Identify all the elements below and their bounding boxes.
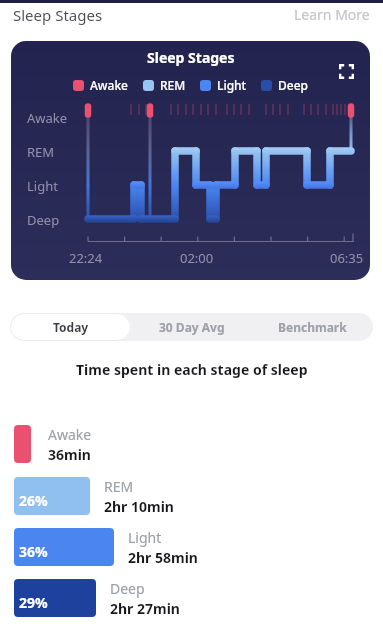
staticText: Deep bbox=[278, 77, 308, 93]
button[interactable]: 36% bbox=[14, 528, 198, 566]
staticText: 29% bbox=[19, 593, 48, 612]
staticText: 36% bbox=[19, 542, 48, 561]
staticText: Awake bbox=[27, 109, 68, 127]
button[interactable]: 30 Day Avg bbox=[131, 313, 252, 341]
staticText: Today bbox=[53, 319, 89, 335]
button[interactable]: 29% bbox=[14, 579, 180, 617]
staticText: 06:35 bbox=[330, 249, 364, 267]
button[interactable]: Today bbox=[10, 313, 131, 341]
staticText: 2hr 27min bbox=[110, 599, 180, 617]
staticText: 26% bbox=[19, 491, 48, 510]
button[interactable]: Learn More bbox=[294, 5, 370, 24]
staticText: REM bbox=[160, 77, 186, 93]
staticText: REM bbox=[104, 477, 134, 496]
staticText: Sleep Stages bbox=[147, 48, 235, 67]
button[interactable]: Awake bbox=[14, 425, 92, 463]
staticText: 02:00 bbox=[180, 249, 214, 267]
staticText: Deep bbox=[27, 211, 60, 229]
staticText: 2hr 10min bbox=[104, 497, 174, 515]
staticText: Awake bbox=[48, 425, 92, 444]
staticText: Light bbox=[217, 77, 247, 93]
button[interactable] bbox=[339, 64, 354, 79]
staticText: Light bbox=[128, 528, 162, 547]
staticText: Benchmark bbox=[278, 319, 347, 335]
staticText: 36min bbox=[48, 445, 91, 463]
staticText: Awake bbox=[90, 77, 129, 93]
staticText: Sleep Stages bbox=[13, 5, 103, 25]
staticText: 2hr 58min bbox=[128, 548, 198, 566]
staticText: 30 Day Avg bbox=[159, 319, 225, 335]
button[interactable]: 26% bbox=[14, 477, 174, 515]
staticText: Light bbox=[27, 177, 58, 195]
staticText: REM bbox=[27, 143, 55, 161]
staticText: 22:24 bbox=[69, 249, 103, 267]
staticText: Time spent in each stage of sleep bbox=[76, 360, 308, 379]
staticText: Deep bbox=[110, 579, 145, 598]
button[interactable]: Benchmark bbox=[252, 313, 373, 341]
